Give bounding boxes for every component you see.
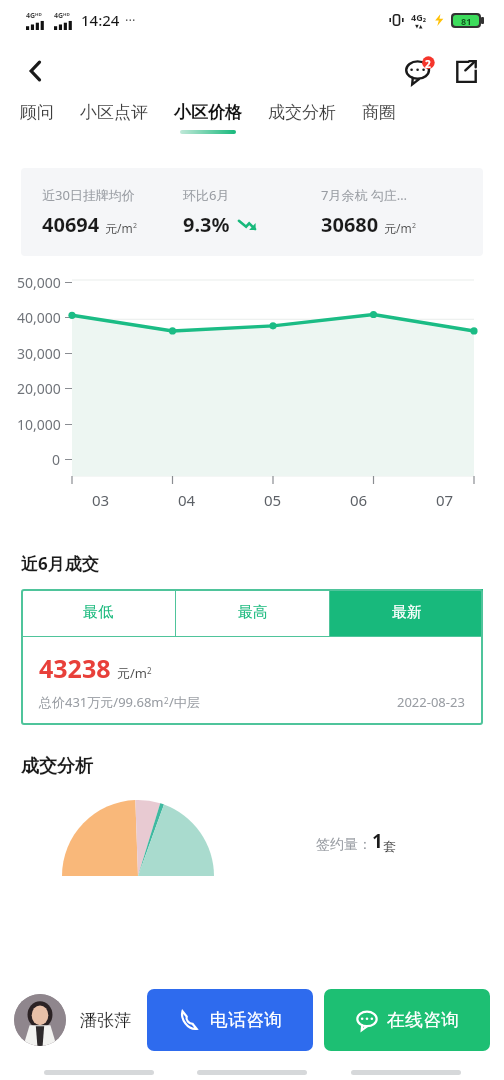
staticText: 最高 bbox=[238, 603, 268, 622]
button[interactable]: 在线咨询 bbox=[324, 989, 490, 1051]
button[interactable]: Messages bbox=[400, 51, 440, 91]
staticText: 在线咨询 bbox=[387, 1009, 459, 1032]
staticText: 14:24 bbox=[81, 10, 120, 30]
staticText: 06 bbox=[350, 490, 368, 510]
staticText: 50,000 bbox=[17, 273, 61, 292]
staticText: 潘张萍 bbox=[80, 1010, 131, 1031]
staticText: 2 bbox=[164, 695, 169, 706]
staticText: 顾问 bbox=[20, 102, 54, 123]
staticText: 成交分析 bbox=[268, 102, 336, 123]
button[interactable]: Share bbox=[446, 51, 486, 91]
staticText: 2 bbox=[147, 665, 152, 676]
staticText: 环比6月 bbox=[183, 186, 230, 204]
staticText: 元/m bbox=[384, 220, 412, 236]
staticText: 4Gᴴᴰ bbox=[26, 11, 42, 21]
staticText: 2 bbox=[412, 221, 417, 231]
button[interactable]: 小区价格 bbox=[172, 102, 244, 134]
staticText: 近6月成交 bbox=[21, 552, 99, 575]
staticText: 7月余杭 勾庄… bbox=[321, 186, 408, 204]
staticText: 套 bbox=[383, 838, 396, 854]
staticText: 商圈 bbox=[362, 102, 396, 123]
staticText: 成交分析 bbox=[21, 755, 93, 778]
staticText: 40,000 bbox=[17, 308, 61, 327]
staticText: 电话咨询 bbox=[210, 1009, 282, 1032]
button[interactable]: Back bbox=[14, 49, 58, 93]
staticText: 4G₂ bbox=[411, 11, 427, 23]
staticText: 30680 bbox=[321, 211, 379, 238]
staticText: 30,000 bbox=[17, 344, 61, 363]
staticText: 43238 bbox=[39, 651, 111, 685]
staticText: 小区点评 bbox=[80, 102, 148, 123]
button[interactable]: 商圈 bbox=[360, 102, 398, 134]
staticText: 最低 bbox=[83, 603, 113, 622]
staticText: 2 bbox=[133, 221, 138, 231]
staticText: 03 bbox=[92, 490, 110, 510]
staticText: 20,000 bbox=[17, 379, 61, 398]
staticText: 小区价格 bbox=[174, 102, 242, 123]
button[interactable]: 最新 bbox=[330, 589, 483, 636]
staticText: 2 bbox=[425, 57, 431, 71]
staticText: 4Gᴴᴰ bbox=[54, 11, 70, 21]
staticText: 81 bbox=[461, 15, 472, 26]
staticText: 总价431万元/99.68m bbox=[39, 693, 164, 711]
button[interactable]: 电话咨询 bbox=[147, 989, 313, 1051]
button[interactable]: 最高 bbox=[176, 589, 329, 636]
staticText: 0 bbox=[52, 450, 61, 469]
staticText: 签约量： bbox=[316, 836, 372, 854]
staticText: 05 bbox=[264, 490, 282, 510]
staticText: 40694 bbox=[42, 211, 100, 238]
staticText: 10,000 bbox=[17, 415, 61, 434]
staticText: 元/m bbox=[117, 664, 147, 682]
staticText: 04 bbox=[178, 490, 196, 510]
staticText: 2022-08-23 bbox=[397, 693, 465, 711]
staticText: 最新 bbox=[392, 603, 422, 622]
button[interactable]: 成交分析 bbox=[266, 102, 338, 134]
staticText: 近30日挂牌均价 bbox=[42, 186, 135, 204]
staticText: ▼▲ bbox=[415, 23, 423, 29]
button[interactable]: 潘张萍 bbox=[14, 994, 131, 1046]
staticText: ··· bbox=[125, 11, 136, 29]
staticText: /中层 bbox=[169, 693, 200, 711]
button[interactable]: 顾问 bbox=[18, 102, 56, 134]
staticText: 元/m bbox=[105, 220, 133, 236]
staticText: 07 bbox=[436, 490, 454, 510]
button[interactable]: 最低 bbox=[21, 589, 175, 636]
button[interactable]: 小区点评 bbox=[78, 102, 150, 134]
staticText: 9.3% bbox=[183, 211, 230, 238]
staticText: 1 bbox=[372, 828, 383, 854]
